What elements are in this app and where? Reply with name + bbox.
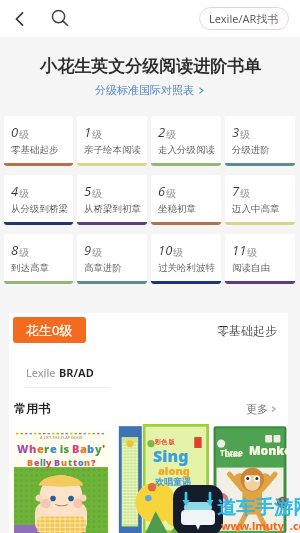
button[interactable]: 9 xyxy=(77,234,147,284)
staticText: 级 xyxy=(92,187,102,200)
button[interactable]: 4 xyxy=(4,175,73,225)
staticText: o xyxy=(78,456,84,468)
button[interactable]: 11 xyxy=(225,234,295,284)
staticText: 小花生英文分级阅读进阶书单 xyxy=(40,56,261,77)
staticText: B xyxy=(54,456,61,468)
button[interactable]: Search xyxy=(46,4,74,32)
staticText: Sing xyxy=(153,445,189,467)
staticText: 8 xyxy=(11,241,19,259)
staticText: 欢唱童谣 xyxy=(155,476,191,487)
staticText: Lexile xyxy=(26,365,59,380)
staticText: 走入分级阅读 xyxy=(158,144,215,156)
staticText: 高章进阶 xyxy=(84,262,122,274)
button[interactable]: A LIFT-THE-FLAP BOOK xyxy=(11,430,111,533)
staticText: 1 xyxy=(84,123,92,141)
staticText: B xyxy=(72,441,80,456)
staticText: 级 xyxy=(92,128,102,141)
staticText: 道车手游网 xyxy=(217,496,300,520)
staticText: 彩色 版 xyxy=(155,438,175,446)
staticText: www.lmuty .com xyxy=(221,518,300,533)
staticText: 从分级到桥梁 xyxy=(11,203,68,215)
staticText: 阅读自由 xyxy=(232,262,270,274)
staticText: 11 xyxy=(232,241,247,259)
staticText: 分级进阶 xyxy=(232,144,270,156)
staticText: 零基础起步 xyxy=(217,323,277,338)
staticText: 迈入中高章 xyxy=(232,203,280,215)
button[interactable]: 3 xyxy=(225,116,295,166)
button[interactable]: 更多 xyxy=(246,402,277,416)
staticText: y xyxy=(46,456,54,468)
button[interactable]: 10 xyxy=(151,234,221,284)
button[interactable]: 彩色 版 xyxy=(117,424,209,533)
staticText: t xyxy=(73,456,78,468)
staticText: 花生0级 xyxy=(26,321,73,339)
staticText: 级 xyxy=(19,246,29,259)
button[interactable]: 8 xyxy=(4,234,73,284)
staticText: Monkey xyxy=(249,442,288,458)
staticText: 6 xyxy=(158,182,166,200)
staticText: 级 xyxy=(240,187,250,200)
button[interactable]: 1 xyxy=(77,116,147,166)
staticText: y xyxy=(95,441,102,456)
staticText: 3 xyxy=(232,123,240,141)
button[interactable]: 分级标准国际对照表 xyxy=(95,83,205,97)
staticText: 级 xyxy=(92,246,102,259)
staticText: l xyxy=(40,456,43,468)
staticText: 更多 xyxy=(246,402,268,416)
staticText: ' xyxy=(102,441,106,456)
staticText: u xyxy=(61,456,68,468)
staticText: 7 xyxy=(232,182,240,200)
button[interactable]: 7 xyxy=(225,175,295,225)
staticText: B xyxy=(27,456,34,468)
staticText: 分级标准国际对照表 xyxy=(95,83,194,97)
staticText: 过关哈利波特 xyxy=(158,262,215,274)
staticText: 零基础起步 xyxy=(11,144,59,156)
staticText: 常用书 xyxy=(14,401,50,416)
staticText: 坐稳初章 xyxy=(158,203,196,215)
staticText: A LIFT-THE-FLAP BOOK xyxy=(40,435,83,440)
staticText: 到达高章 xyxy=(11,262,49,274)
staticText: e xyxy=(37,441,44,456)
staticText: 级 xyxy=(19,128,29,141)
staticText: 从桥梁到初章 xyxy=(84,203,141,215)
staticText: 级 xyxy=(166,128,176,141)
staticText: Little xyxy=(225,451,241,459)
staticText: b xyxy=(87,441,95,456)
button[interactable]: 2 xyxy=(151,116,221,166)
staticText: 级 xyxy=(166,187,176,200)
staticText: ? xyxy=(91,456,96,468)
staticText: W xyxy=(17,441,29,456)
staticText: 亲子绘本阅读 xyxy=(84,144,141,156)
button[interactable]: 6 xyxy=(151,175,221,225)
staticText: 0 xyxy=(11,123,19,141)
button[interactable]: Back xyxy=(6,5,34,33)
button[interactable]: Three xyxy=(212,424,288,533)
staticText: a xyxy=(80,441,87,456)
staticText: 10 xyxy=(158,241,173,259)
staticText: r xyxy=(44,441,50,456)
staticText: e xyxy=(50,441,57,456)
button[interactable]: 花生0级 xyxy=(13,317,86,343)
staticText: 级 xyxy=(173,246,183,259)
staticText: 级 xyxy=(247,246,257,259)
staticText: 级 xyxy=(240,128,250,141)
staticText: e xyxy=(34,456,40,468)
staticText: is xyxy=(57,441,72,456)
staticText: h xyxy=(29,441,37,456)
button[interactable]: Lexile/AR找书 xyxy=(199,7,289,30)
staticText: t xyxy=(68,456,73,468)
staticText: n xyxy=(84,456,91,468)
staticText: 2 xyxy=(158,123,166,141)
staticText: 5 xyxy=(84,182,92,200)
staticText: BR/AD xyxy=(59,365,94,380)
staticText: along xyxy=(158,463,190,478)
staticText: 4 xyxy=(11,182,19,200)
button[interactable]: 5 xyxy=(77,175,147,225)
staticText: 9 xyxy=(84,241,92,259)
staticText: 级 xyxy=(19,187,29,200)
staticText: l xyxy=(43,456,46,468)
staticText: Three xyxy=(220,447,243,458)
staticText: Lexile/AR找书 xyxy=(209,11,279,26)
button[interactable]: 0 xyxy=(4,116,73,166)
